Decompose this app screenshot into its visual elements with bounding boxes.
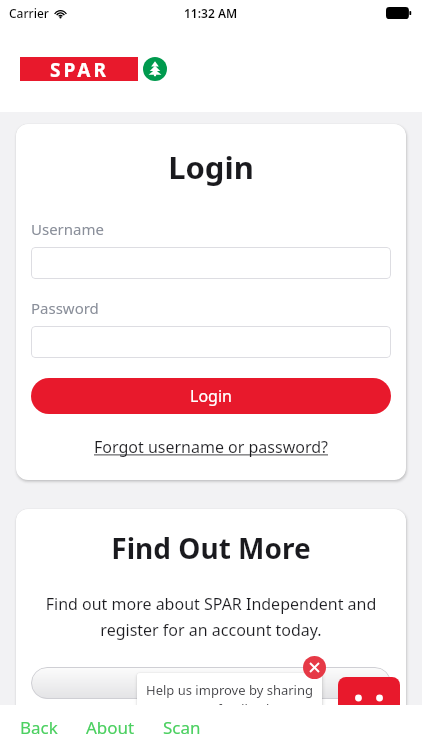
button[interactable]: Find out more	[31, 667, 391, 699]
button[interactable]: Login	[31, 378, 391, 414]
staticText: Forgot username or password?	[94, 436, 329, 458]
staticText: Carrier	[9, 5, 49, 21]
button[interactable]	[31, 247, 391, 279]
staticText: Username	[31, 219, 104, 239]
button[interactable]: Forgot username or password?	[31, 436, 391, 458]
staticText: Find Out More	[16, 529, 406, 567]
staticText: About	[86, 716, 135, 739]
button[interactable]: Close feedback prompt	[303, 656, 326, 679]
button[interactable]: About	[84, 712, 137, 743]
button[interactable]: Scan	[161, 712, 203, 743]
button[interactable]: Help us improve by sharing your feedback	[137, 673, 322, 731]
staticText: Find out more	[158, 672, 264, 694]
button[interactable]: Feedback assistant	[338, 677, 400, 727]
button[interactable]	[31, 326, 391, 358]
staticText: 11:32 AM	[184, 5, 238, 21]
staticText: Scan	[163, 716, 201, 739]
button[interactable]: Back	[18, 712, 60, 743]
staticText: Login	[16, 146, 406, 188]
staticText: Back	[20, 716, 58, 739]
staticText: Login	[190, 385, 232, 407]
staticText: Help us improve by sharing your feedback	[143, 681, 316, 718]
staticText: Password	[31, 298, 99, 318]
staticText: SPAR	[50, 57, 109, 81]
staticText: Find out more about SPAR Independent and…	[32, 593, 390, 641]
